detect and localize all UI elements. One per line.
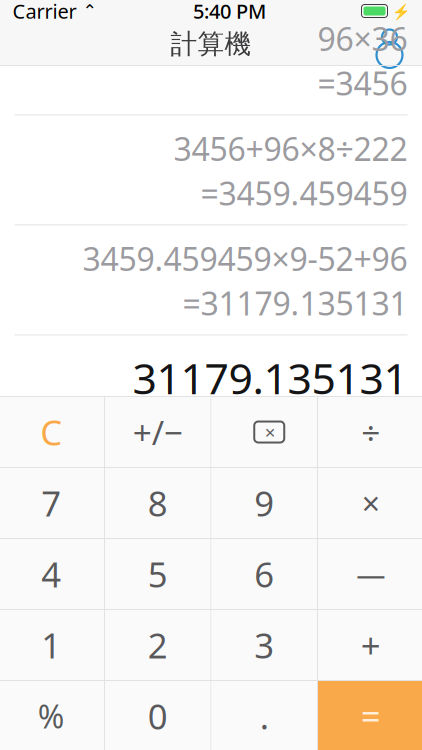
- button[interactable]: ×: [318, 468, 422, 538]
- staticText: 4: [41, 551, 61, 597]
- staticText: 5:40 PM: [193, 0, 266, 24]
- staticText: 3: [254, 622, 274, 668]
- staticText: 8: [148, 480, 168, 526]
- button[interactable]: 2: [105, 610, 210, 680]
- staticText: 96×36: [317, 17, 407, 60]
- button[interactable]: 5: [105, 539, 210, 609]
- staticText: =3459.459459: [200, 172, 407, 214]
- staticText: =3456: [317, 62, 407, 104]
- staticText: 7: [41, 480, 61, 526]
- button[interactable]: Account: [367, 23, 411, 65]
- staticText: 2: [148, 622, 168, 668]
- staticText: 9: [254, 480, 274, 526]
- button[interactable]: 8: [105, 468, 210, 538]
- button[interactable]: 4: [0, 539, 104, 609]
- button[interactable]: %: [0, 681, 104, 750]
- button[interactable]: =: [318, 681, 422, 750]
- button[interactable]: 6: [211, 539, 317, 609]
- button[interactable]: 9: [211, 468, 317, 538]
- button[interactable]: +: [318, 610, 422, 680]
- staticText: Carrier: [12, 0, 76, 24]
- staticText: %: [38, 695, 65, 737]
- button[interactable]: C: [0, 397, 104, 467]
- button[interactable]: —: [318, 539, 422, 609]
- staticText: =31179.135131: [182, 282, 407, 324]
- button[interactable]: .: [211, 681, 317, 750]
- staticText: 0: [148, 693, 168, 739]
- staticText: +/−: [133, 410, 183, 454]
- staticText: +: [361, 622, 381, 668]
- button[interactable]: 7: [0, 468, 104, 538]
- staticText: —: [356, 554, 385, 593]
- staticText: 1: [41, 622, 61, 668]
- staticText: 6: [254, 551, 274, 597]
- staticText: 31179.135131: [132, 349, 407, 406]
- button[interactable]: 3: [211, 610, 317, 680]
- button[interactable]: ÷: [318, 397, 422, 467]
- button[interactable]: +/−: [105, 397, 210, 467]
- staticText: 3459.459459×9-52+96: [82, 237, 407, 280]
- staticText: ⚡: [387, 1, 409, 21]
- staticText: ⌃: [76, 1, 97, 21]
- staticText: =: [361, 693, 381, 739]
- button[interactable]: Backspace: [211, 397, 317, 467]
- staticText: 31179.135131: [200, 406, 407, 449]
- button[interactable]: 1: [0, 610, 104, 680]
- staticText: ×: [362, 482, 380, 524]
- button[interactable]: 0: [105, 681, 210, 750]
- staticText: 3456+96×8÷222: [173, 127, 407, 170]
- staticText: ×: [265, 420, 276, 444]
- staticText: .: [260, 693, 269, 739]
- staticText: ÷: [361, 410, 380, 454]
- staticText: 計算機: [170, 28, 251, 60]
- staticText: 5: [148, 551, 168, 597]
- staticText: C: [40, 409, 62, 455]
